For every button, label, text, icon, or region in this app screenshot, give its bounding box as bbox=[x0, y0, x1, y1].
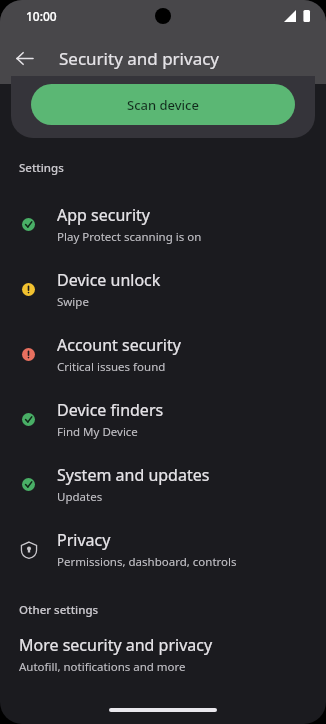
button[interactable]: Account security bbox=[0, 322, 326, 387]
button[interactable]: More security and privacy bbox=[0, 634, 326, 675]
staticText: Autofill, notifications and more bbox=[19, 659, 186, 675]
button[interactable]: Device unlock bbox=[0, 257, 326, 322]
button[interactable]: Privacy bbox=[0, 517, 326, 582]
staticText: Critical issues found bbox=[57, 359, 166, 375]
staticText: Settings bbox=[19, 160, 64, 176]
button[interactable]: Back bbox=[7, 41, 41, 75]
staticText: Updates bbox=[57, 489, 103, 505]
staticText: Device finders bbox=[57, 399, 164, 421]
staticText: 10:00 bbox=[26, 8, 57, 24]
staticText: Scan device bbox=[127, 96, 199, 114]
staticText: Device unlock bbox=[57, 269, 161, 291]
staticText: Swipe bbox=[57, 294, 89, 310]
button[interactable]: App security bbox=[0, 192, 326, 257]
staticText: Privacy bbox=[57, 529, 111, 551]
staticText: More security and privacy bbox=[19, 634, 213, 656]
staticText: Permissions, dashboard, controls bbox=[57, 554, 237, 570]
button[interactable]: System and updates bbox=[0, 452, 326, 517]
button[interactable]: Scan device bbox=[31, 84, 295, 125]
staticText: Account security bbox=[57, 334, 181, 356]
staticText: Find My Device bbox=[57, 424, 138, 440]
staticText: Play Protect scanning is on bbox=[57, 229, 202, 245]
staticText: Security and privacy bbox=[59, 47, 220, 70]
button[interactable]: Device finders bbox=[0, 387, 326, 452]
staticText: Other settings bbox=[19, 602, 99, 618]
staticText: App security bbox=[57, 204, 150, 226]
staticText: System and updates bbox=[57, 464, 210, 486]
